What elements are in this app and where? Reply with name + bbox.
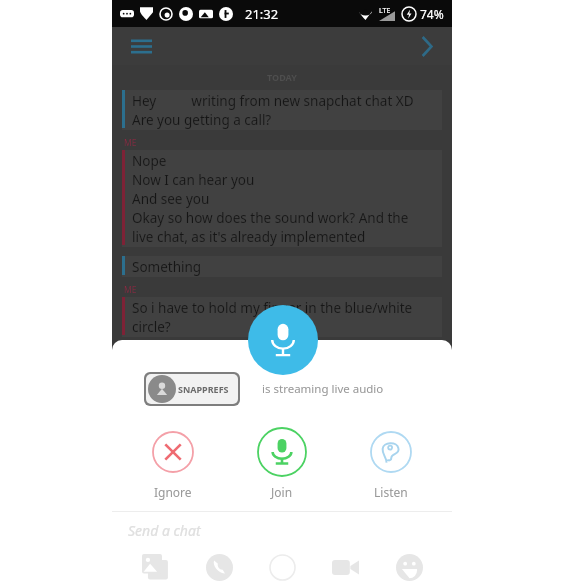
button[interactable]: Menu <box>124 29 158 63</box>
staticText: Send a chat <box>128 521 201 540</box>
button[interactable]: Listen <box>343 424 439 500</box>
staticText: ME <box>124 137 137 149</box>
staticText: is streaming live audio <box>262 381 384 397</box>
staticText: 21:32 <box>245 5 279 23</box>
button[interactable]: Gallery <box>135 550 175 584</box>
button[interactable]: Capture <box>262 550 302 584</box>
staticText: Join <box>271 484 293 500</box>
button[interactable]: Something <box>122 256 442 277</box>
button[interactable]: So i have to hold my finger in the blue/… <box>122 297 442 337</box>
staticText: Now I can hear you <box>132 171 255 189</box>
button[interactable]: Hey writing from new snapchat chat XD <box>122 90 442 130</box>
button[interactable]: SNAPPREFS <box>146 374 238 404</box>
button[interactable]: Emoji <box>389 550 429 584</box>
staticText: LTE <box>379 6 391 16</box>
staticText: Hey writing from new snapchat chat XD <box>132 92 414 110</box>
staticText: ME <box>124 284 137 296</box>
button[interactable]: Nope <box>122 150 442 247</box>
button[interactable]: Next <box>410 30 442 62</box>
staticText: circle? <box>132 318 171 336</box>
staticText: So i have to hold my finger in the blue/… <box>132 299 413 317</box>
staticText: Listen <box>374 484 408 500</box>
staticText: Ignore <box>154 484 192 500</box>
button[interactable]: Join <box>234 424 330 500</box>
staticText: Something <box>132 258 202 276</box>
button[interactable]: Ignore <box>125 424 221 500</box>
button[interactable]: Video <box>325 550 365 584</box>
staticText: TODAY <box>267 71 297 83</box>
staticText: live chat, as it's already implemented <box>132 228 366 246</box>
staticText: Are you getting a call? <box>132 111 272 129</box>
button[interactable]: Microphone <box>248 305 318 375</box>
staticText: 74% <box>420 6 444 22</box>
staticText: Nope <box>132 152 167 170</box>
staticText: SNAPPREFS <box>178 383 229 395</box>
button[interactable]: Call <box>199 550 239 584</box>
staticText: Okay so how does the sound work? And the <box>132 209 409 227</box>
staticText: And see you <box>132 190 210 208</box>
